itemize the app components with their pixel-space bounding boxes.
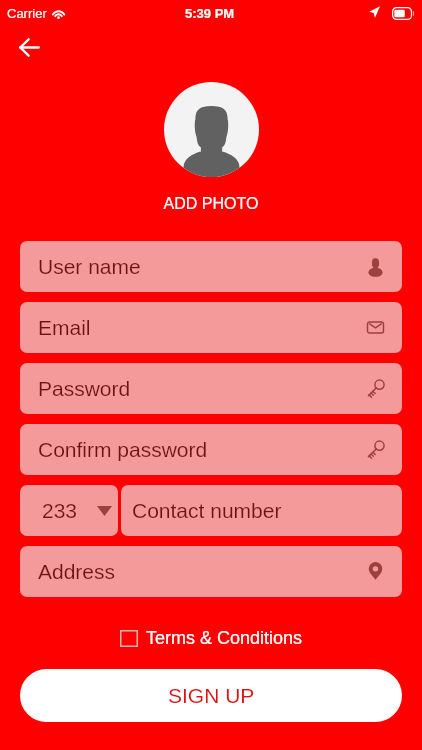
staticText: Carrier (7, 6, 47, 21)
staticText: Email (38, 316, 91, 339)
staticText: User name (38, 255, 141, 278)
button[interactable]: SIGN UP (20, 669, 402, 722)
button[interactable]: Add photo (164, 82, 259, 177)
staticText: 5:39 PM (185, 6, 235, 21)
staticText: 233 (42, 499, 78, 522)
button[interactable]: 233 (20, 485, 118, 536)
staticText: Password (38, 377, 131, 400)
staticText: Confirm password (38, 438, 208, 461)
button[interactable]: Email (20, 302, 402, 353)
staticText: Address (38, 560, 116, 583)
staticText: SIGN UP (168, 684, 255, 707)
staticText: ADD PHOTO (0, 195, 422, 213)
button[interactable]: Password (20, 363, 402, 414)
button[interactable]: Contact number (121, 485, 402, 536)
staticText: Contact number (132, 499, 282, 522)
staticText: Terms & Conditions (146, 628, 303, 648)
button[interactable]: Terms & Conditions (120, 628, 303, 648)
button[interactable]: Back (5, 23, 53, 71)
button[interactable]: Address (20, 546, 402, 597)
button[interactable]: Confirm password (20, 424, 402, 475)
button[interactable]: User name (20, 241, 402, 292)
